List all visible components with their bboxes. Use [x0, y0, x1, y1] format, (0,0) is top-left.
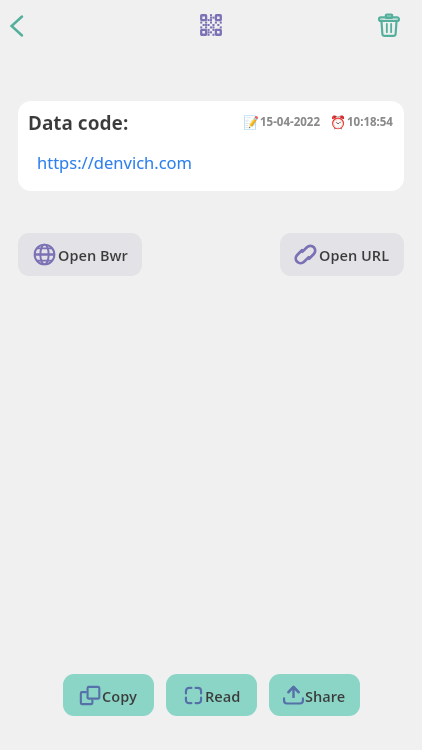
staticText: 10:18:54 [347, 114, 393, 130]
button[interactable]: Back [0, 4, 44, 48]
button[interactable]: Delete [367, 3, 411, 47]
staticText: 15-04-2022 [260, 114, 320, 130]
staticText: ⏰ [330, 115, 347, 130]
staticText: Data code: [28, 110, 129, 136]
staticText: 📝 [243, 115, 260, 130]
button[interactable]: Open URL [280, 233, 404, 276]
staticText: Share [305, 686, 346, 706]
button[interactable]: Share [269, 674, 360, 716]
staticText: Copy [102, 686, 137, 706]
button[interactable]: Open Bwr [18, 233, 142, 276]
button[interactable]: QR code [189, 3, 233, 47]
button[interactable]: Read [166, 674, 257, 716]
staticText: Read [205, 686, 241, 706]
button[interactable]: Copy [63, 674, 154, 716]
staticText: Open Bwr [58, 245, 128, 265]
button[interactable]: https://denvich.com [37, 151, 193, 173]
staticText: Open URL [319, 245, 390, 265]
